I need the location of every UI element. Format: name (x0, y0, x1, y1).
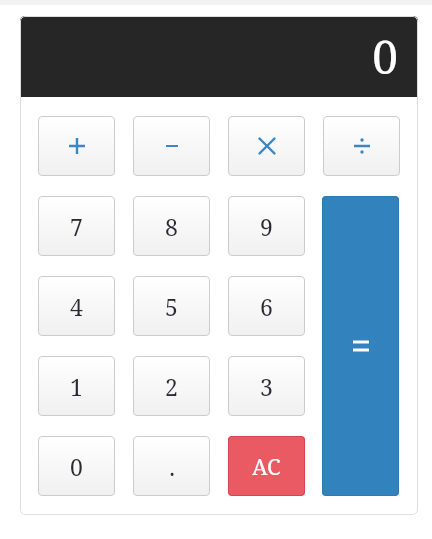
staticText: 9 (260, 211, 273, 242)
staticText: 8 (165, 211, 178, 242)
button[interactable]: 6 (228, 276, 305, 336)
staticText: 2 (165, 371, 178, 402)
button[interactable]: AC (228, 436, 305, 496)
button[interactable]: Divide (323, 116, 400, 176)
staticText: 6 (260, 291, 273, 322)
button[interactable]: 0 (38, 436, 115, 496)
button[interactable]: Multiply (228, 116, 305, 176)
staticText: AC (252, 451, 281, 481)
button[interactable]: . (133, 436, 210, 496)
staticText: 7 (70, 211, 83, 242)
button[interactable]: Minus (133, 116, 210, 176)
button[interactable]: 5 (133, 276, 210, 336)
button[interactable]: 9 (228, 196, 305, 256)
button[interactable]: Equals (322, 196, 399, 496)
button[interactable]: 1 (38, 356, 115, 416)
staticText: 5 (165, 291, 178, 322)
button[interactable]: 2 (133, 356, 210, 416)
button[interactable]: Plus (38, 116, 115, 176)
button[interactable]: 4 (38, 276, 115, 336)
staticText: 0 (372, 25, 398, 88)
staticText: . (169, 451, 175, 482)
staticText: 1 (70, 371, 83, 402)
button[interactable]: 3 (228, 356, 305, 416)
button[interactable]: 7 (38, 196, 115, 256)
button[interactable]: 8 (133, 196, 210, 256)
staticText: 0 (70, 451, 83, 482)
staticText: 3 (260, 371, 273, 402)
staticText: 4 (70, 291, 83, 322)
